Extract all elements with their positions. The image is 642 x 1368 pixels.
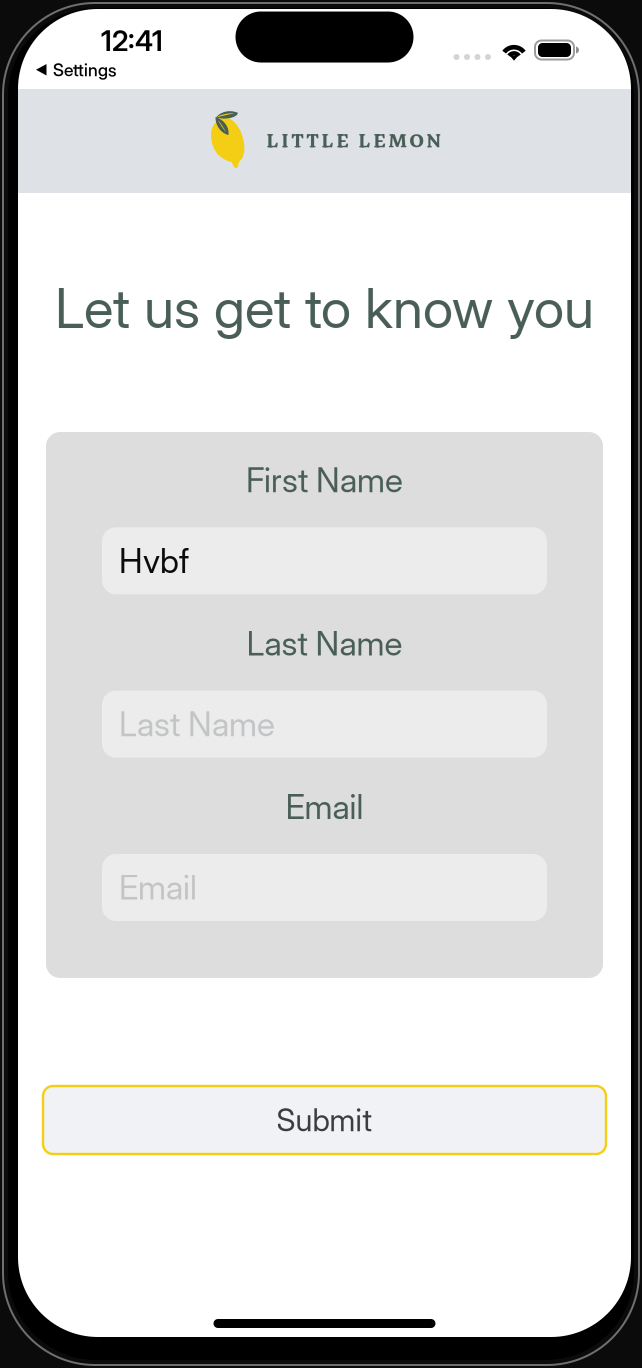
- staticText: First Name: [246, 460, 403, 500]
- button[interactable]: Email: [102, 854, 547, 921]
- button[interactable]: Submit: [43, 1086, 606, 1154]
- staticText: Hvbf: [119, 541, 189, 581]
- button[interactable]: Settings: [18, 62, 124, 90]
- button[interactable]: Hvbf: [102, 527, 547, 594]
- button[interactable]: Last Name: [102, 691, 547, 758]
- staticText: LITTLE LEMON: [266, 125, 440, 157]
- staticText: Last Name: [246, 623, 402, 664]
- staticText: Email: [119, 867, 197, 908]
- staticText: Email: [285, 787, 363, 827]
- staticText: Settings: [53, 59, 116, 80]
- staticText: Submit: [276, 1101, 372, 1138]
- staticText: Let us get to know you: [55, 275, 594, 341]
- staticText: Last Name: [119, 704, 275, 744]
- staticText: 12:41: [101, 24, 163, 58]
